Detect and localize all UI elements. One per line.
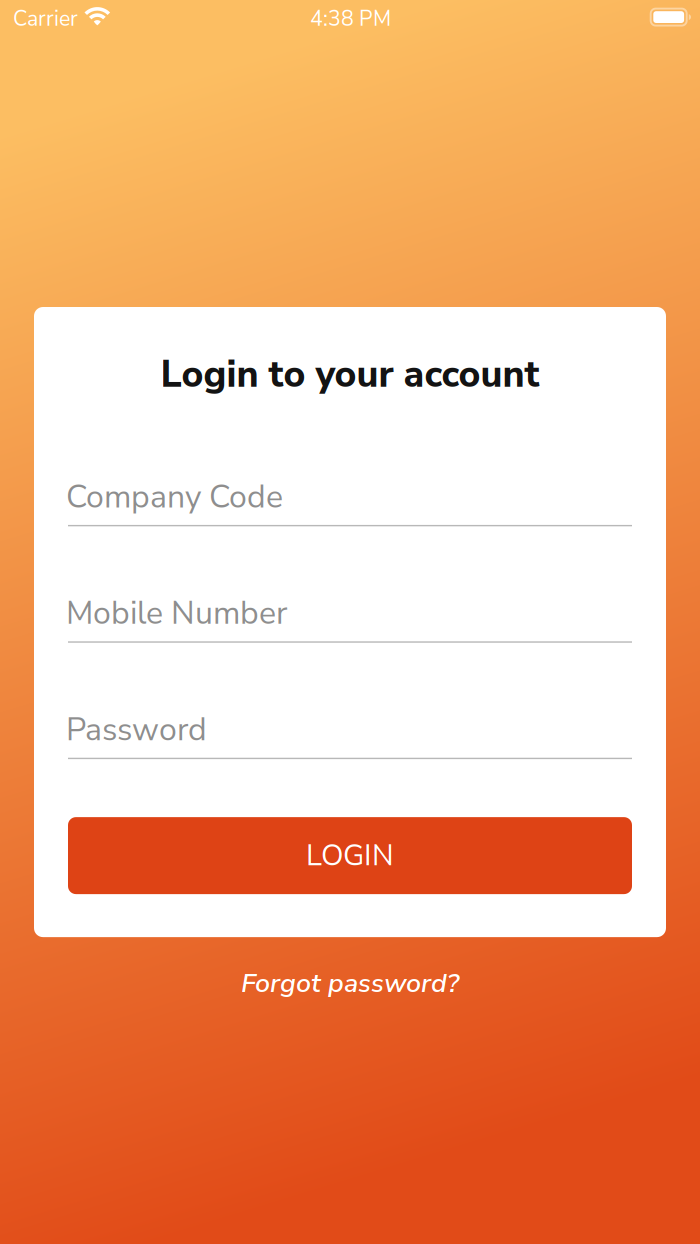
staticText: LOGIN (306, 836, 394, 876)
staticText: 4:38 PM (310, 4, 391, 33)
staticText: Password (66, 708, 207, 751)
staticText: Login to your account (160, 349, 539, 400)
staticText: Company Code (66, 475, 283, 519)
staticText: Mobile Number (66, 591, 287, 635)
button[interactable]: Forgot password? (241, 965, 459, 1001)
button[interactable]: Mobile Number (68, 598, 632, 643)
button[interactable]: LOGIN (68, 817, 632, 894)
staticText: Forgot password? (241, 965, 459, 1001)
staticText: Carrier (13, 4, 78, 33)
button[interactable]: Company Code (68, 482, 632, 526)
button[interactable]: Password (68, 715, 632, 759)
